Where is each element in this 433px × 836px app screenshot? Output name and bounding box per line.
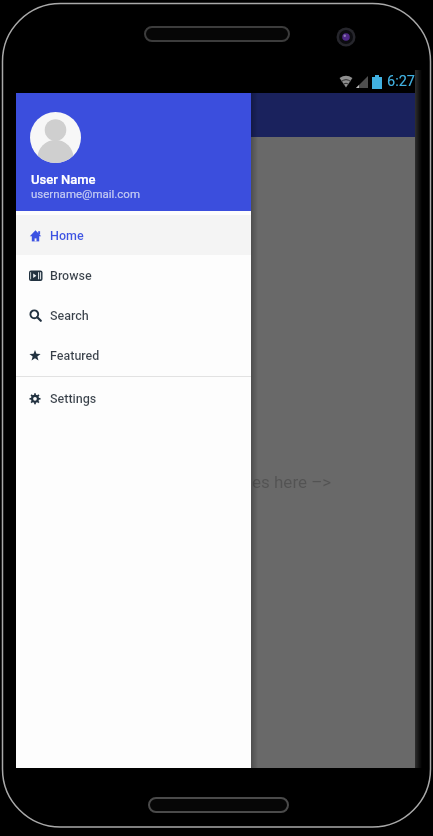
button[interactable]: Search <box>16 295 251 335</box>
staticText: User Name <box>31 172 96 187</box>
button[interactable]: User Name <box>16 93 251 211</box>
staticText: Settings <box>50 391 97 406</box>
staticText: Featured <box>50 348 100 363</box>
staticText: es here –> <box>252 472 332 492</box>
button[interactable]: Home <box>16 215 251 255</box>
staticText: username@mail.com <box>31 187 141 200</box>
button[interactable]: Settings <box>16 378 251 418</box>
staticText: Home <box>50 228 84 243</box>
button[interactable]: Browse <box>16 255 251 295</box>
staticText: 6:27 <box>387 73 415 90</box>
staticText: Search <box>50 308 89 323</box>
staticText: Browse <box>50 268 92 283</box>
button[interactable]: Featured <box>16 335 251 375</box>
